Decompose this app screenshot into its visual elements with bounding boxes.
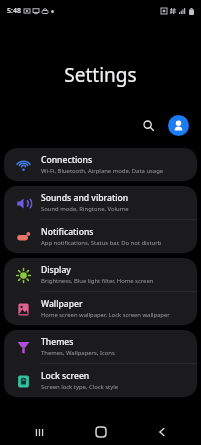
staticText: Sounds and vibration: [41, 192, 129, 204]
staticText: Themes: [41, 336, 74, 348]
button[interactable]: Recents: [17, 419, 61, 445]
button[interactable]: Sounds and vibration: [4, 186, 197, 219]
button[interactable]: Home: [79, 419, 123, 445]
button[interactable]: Wallpaper: [4, 292, 197, 325]
staticText: Home screen wallpaper, Lock screen wallp…: [41, 311, 170, 319]
button[interactable]: Themes: [4, 330, 197, 363]
button[interactable]: Lock screen: [4, 364, 197, 397]
staticText: App notifications, Status bar, Do not di…: [41, 239, 162, 247]
staticText: Themes, Wallpapers, Icons: [41, 349, 115, 357]
button[interactable]: Display: [4, 258, 197, 291]
staticText: Connections: [41, 154, 93, 166]
button[interactable]: Notifications: [4, 220, 197, 253]
staticText: 5:48: [7, 6, 21, 16]
staticText: Settings: [0, 62, 201, 88]
staticText: Wallpaper: [41, 298, 83, 310]
button[interactable]: Profile: [168, 115, 189, 136]
staticText: Notifications: [41, 226, 94, 238]
staticText: Brightness, Blue light filter, Home scre…: [41, 277, 154, 285]
button[interactable]: Back: [140, 419, 184, 445]
staticText: Sound mode, Ringtone, Volume: [41, 205, 129, 213]
button[interactable]: Connections: [4, 148, 197, 181]
button[interactable]: Search: [135, 112, 161, 138]
staticText: Display: [41, 264, 71, 276]
staticText: Wi-Fi, Bluetooth, Airplane mode, Data us…: [41, 167, 164, 175]
staticText: Lock screen: [41, 370, 90, 382]
staticText: Screen lock type, Clock style: [41, 383, 119, 391]
